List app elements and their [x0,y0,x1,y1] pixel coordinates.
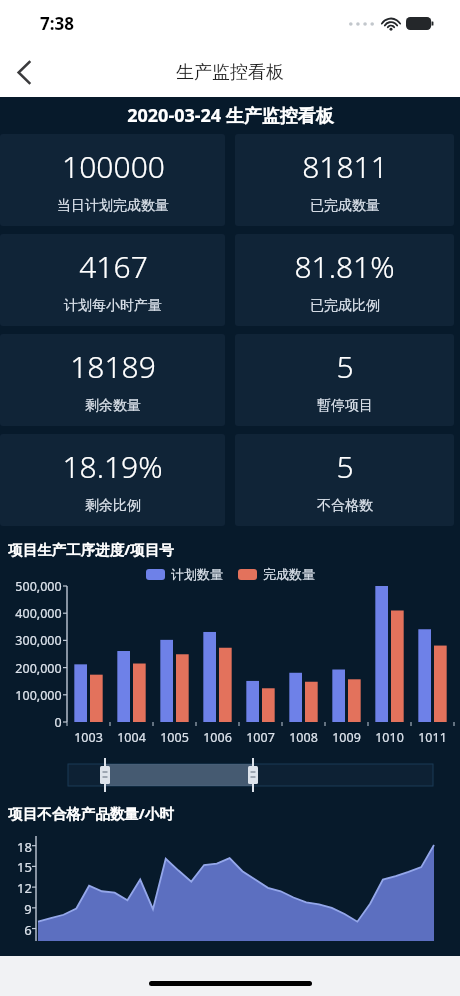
button[interactable]: 18.19% [0,434,225,526]
staticText: 已完成数量 [310,197,380,215]
staticText: 生产监控看板 [176,61,284,84]
staticText: 400,000 [15,605,62,622]
staticText: 100000 [62,146,165,187]
staticText: 计划每小时产量 [64,297,162,315]
staticText: 9 [24,900,32,918]
staticText: 18189 [70,346,156,387]
staticText: 100,000 [15,687,62,704]
staticText: 0 [54,714,62,731]
staticText: 300,000 [15,632,62,649]
button[interactable]: Back [0,48,48,96]
staticText: 6 [24,921,32,939]
staticText: 5 [336,346,354,387]
staticText: 1010 [375,729,404,746]
staticText: 1006 [203,729,232,746]
staticText: 暫停项目 [317,397,373,415]
staticText: 已完成比例 [310,297,380,315]
staticText: 1008 [289,729,318,746]
staticText: 1011 [418,729,447,746]
staticText: 1004 [117,729,146,746]
staticText: 1009 [332,729,361,746]
staticText: 不合格数 [317,497,373,515]
button[interactable]: 完成数量 [238,566,315,582]
button[interactable]: 18189 [0,334,225,426]
staticText: 项目不合格产品数量/小时 [8,803,174,823]
button[interactable]: 5 [235,434,454,526]
staticText: 剩余比例 [85,497,141,515]
staticText: 18 [17,838,32,856]
staticText: 81811 [302,146,388,187]
staticText: 1005 [160,729,189,746]
staticText: 15 [17,858,32,876]
staticText: 81.81% [294,246,395,287]
button[interactable]: 81811 [235,134,454,226]
staticText: 7:38 [40,12,74,35]
staticText: 4167 [79,246,148,287]
staticText: 完成数量 [263,566,315,582]
button[interactable]: 4167 [0,234,225,326]
staticText: 1003 [74,729,103,746]
button[interactable]: 5 [235,334,454,426]
button[interactable]: 计划数量 [146,566,223,582]
staticText: 项目生产工序进度/项目号 [8,539,174,559]
button[interactable]: 100000 [0,134,225,226]
staticText: 500,000 [15,578,62,595]
staticText: 200,000 [15,660,62,677]
staticText: 剩余数量 [85,397,141,415]
staticText: 2020-03-24 生产监控看板 [127,103,334,128]
staticText: 1007 [246,729,275,746]
staticText: 5 [336,446,354,487]
staticText: 计划数量 [171,566,223,582]
button[interactable]: 81.81% [235,234,454,326]
staticText: 18.19% [62,446,163,487]
staticText: 当日计划完成数量 [57,197,169,215]
staticText: 12 [17,879,32,897]
